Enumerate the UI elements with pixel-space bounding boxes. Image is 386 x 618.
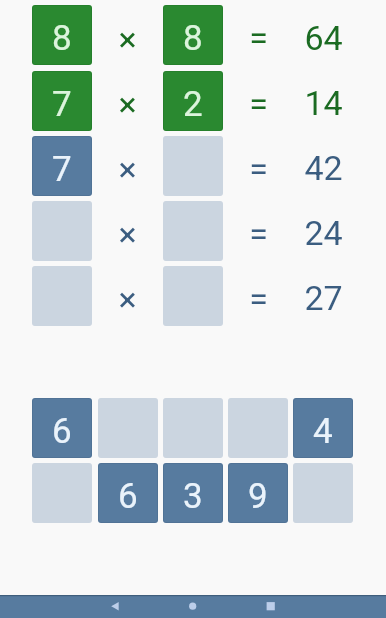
button[interactable]: tile 6 bbox=[98, 463, 158, 523]
staticText: 6 bbox=[52, 411, 72, 452]
staticText: 7 bbox=[52, 84, 72, 125]
staticText: = bbox=[249, 84, 268, 124]
button[interactable]: tile 6 bbox=[32, 398, 92, 458]
staticText: = bbox=[249, 279, 268, 319]
staticText: × bbox=[118, 19, 137, 59]
staticText: 24 bbox=[304, 213, 343, 253]
button[interactable]: factor 1 row 3 bbox=[32, 136, 92, 196]
staticText: × bbox=[118, 214, 137, 254]
staticText: × bbox=[118, 149, 137, 189]
staticText: 9 bbox=[248, 476, 268, 517]
staticText: 4 bbox=[313, 411, 333, 452]
staticText: × bbox=[118, 279, 137, 319]
button[interactable]: factor 1 row 1 bbox=[32, 5, 92, 65]
staticText: 64 bbox=[304, 18, 343, 58]
staticText: 3 bbox=[183, 476, 203, 517]
staticText: 14 bbox=[304, 83, 343, 123]
staticText: = bbox=[249, 214, 268, 254]
staticText: 8 bbox=[52, 18, 72, 59]
staticText: × bbox=[118, 84, 137, 124]
staticText: 7 bbox=[52, 149, 72, 190]
staticText: 27 bbox=[304, 278, 343, 318]
button[interactable]: tile 9 bbox=[228, 463, 288, 523]
button[interactable]: factor 1 row 2 bbox=[32, 71, 92, 131]
staticText: = bbox=[249, 18, 268, 58]
staticText: 42 bbox=[304, 148, 343, 188]
button[interactable]: tile 4 bbox=[293, 398, 353, 458]
button[interactable]: tile 3 bbox=[163, 463, 223, 523]
staticText: 6 bbox=[118, 476, 138, 517]
button[interactable]: factor 2 row 2 bbox=[163, 71, 223, 131]
button[interactable]: factor 2 row 1 bbox=[163, 5, 223, 65]
staticText: = bbox=[249, 149, 268, 189]
staticText: 8 bbox=[183, 18, 203, 59]
staticText: 2 bbox=[183, 84, 203, 125]
